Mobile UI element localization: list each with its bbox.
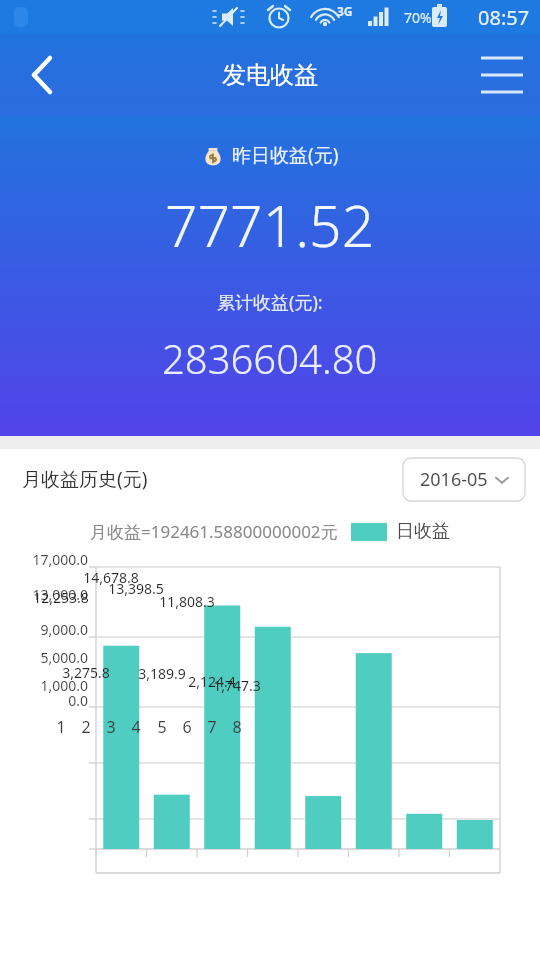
staticText: 2,124.4 [188,672,236,691]
staticText: 7 [207,716,217,738]
staticText: 17,000.0 [32,550,88,569]
staticText: 13,398.5 [108,579,164,598]
staticText: 0.0 [68,691,88,710]
staticText: 月收益历史(元) [22,466,148,492]
staticText: 2836604.80 [162,331,378,385]
staticText: 累计收益(元): [217,290,323,315]
staticText: 5,000.0 [40,648,88,667]
button[interactable]: 2016-05 [403,458,525,501]
staticText: 12,253.8 [33,588,89,607]
staticText: 2016-05 [420,467,488,492]
staticText: 3 [106,716,116,738]
staticText: 11,808.3 [159,592,215,611]
staticText: 6 [182,716,192,738]
staticText: 08:57 [478,4,530,31]
staticText: 日收益 [396,520,450,543]
staticText: 4 [131,716,141,738]
staticText: 发电收益 [222,60,318,90]
staticText: 7771.52 [165,186,375,264]
staticText: 3,275.8 [62,663,110,682]
staticText: 3,189.9 [138,664,186,683]
staticText: 1,747.3 [213,676,261,695]
staticText: 1 [56,716,66,738]
staticText: 月收益=192461.58800000002元 [90,520,338,543]
staticText: 8 [232,716,242,738]
staticText: 3G [337,3,353,19]
staticText: 5 [157,716,167,738]
button[interactable]: Menu [470,40,540,110]
staticText: 14,678.8 [83,568,139,587]
button[interactable]: Back [0,40,70,110]
staticText: 1,000.0 [40,676,88,695]
staticText: 13,000.0 [32,585,88,604]
staticText: 70% [404,8,432,27]
staticText: 昨日收益(元) [232,142,339,168]
staticText: 9,000.0 [40,620,88,639]
staticText: 2 [81,716,91,738]
